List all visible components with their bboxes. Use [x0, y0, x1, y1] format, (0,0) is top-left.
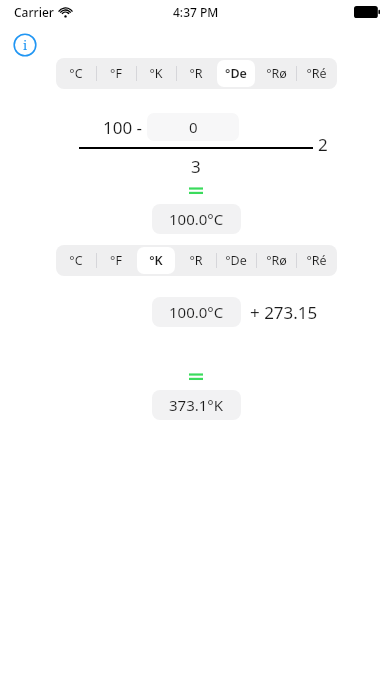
staticText: °De — [225, 65, 247, 82]
staticText: Carrier — [14, 4, 54, 20]
staticText: 100 - — [103, 116, 143, 139]
staticText: 100.0°C — [169, 209, 224, 229]
staticText: °Rø — [266, 65, 287, 82]
staticText: 100.0°C — [169, 302, 224, 322]
staticText: 2 — [318, 133, 328, 156]
button[interactable]: 100.0°C — [152, 204, 241, 234]
button[interactable]: °F — [96, 58, 136, 89]
staticText: °K — [149, 65, 163, 82]
staticText: °R — [189, 252, 203, 269]
button[interactable]: Info — [13, 33, 37, 57]
staticText: + 273.15 — [250, 301, 318, 324]
staticText: 373.1°K — [169, 395, 224, 415]
staticText: °Rø — [266, 252, 287, 269]
button[interactable]: °C — [56, 245, 96, 276]
button[interactable]: 373.1°K — [152, 390, 241, 420]
button[interactable]: °Ré — [296, 58, 336, 89]
staticText: 3 — [191, 155, 201, 178]
button[interactable]: °R — [176, 58, 216, 89]
staticText: °K — [149, 252, 163, 269]
button[interactable]: °De — [216, 58, 256, 89]
button[interactable]: 0 — [147, 113, 239, 141]
button[interactable]: °R — [176, 245, 216, 276]
staticText: °Ré — [306, 65, 327, 82]
button[interactable]: °C — [56, 58, 96, 89]
staticText: i — [23, 36, 28, 54]
staticText: 0 — [189, 117, 198, 137]
staticText: °Ré — [306, 252, 327, 269]
button[interactable]: °Rø — [256, 245, 296, 276]
staticText: °R — [189, 65, 203, 82]
button[interactable]: °Ré — [296, 245, 336, 276]
button[interactable]: °F — [96, 245, 136, 276]
staticText: °De — [225, 252, 247, 269]
button[interactable]: °K — [136, 58, 176, 89]
staticText: °C — [69, 65, 83, 82]
button[interactable]: 100.0°C — [152, 297, 241, 327]
staticText: °C — [69, 252, 83, 269]
button[interactable]: °Rø — [256, 58, 296, 89]
button[interactable]: °K — [136, 245, 176, 276]
staticText: 4:37 PM — [173, 4, 219, 20]
staticText: °F — [110, 65, 122, 82]
button[interactable]: °De — [216, 245, 256, 276]
staticText: °F — [110, 252, 122, 269]
